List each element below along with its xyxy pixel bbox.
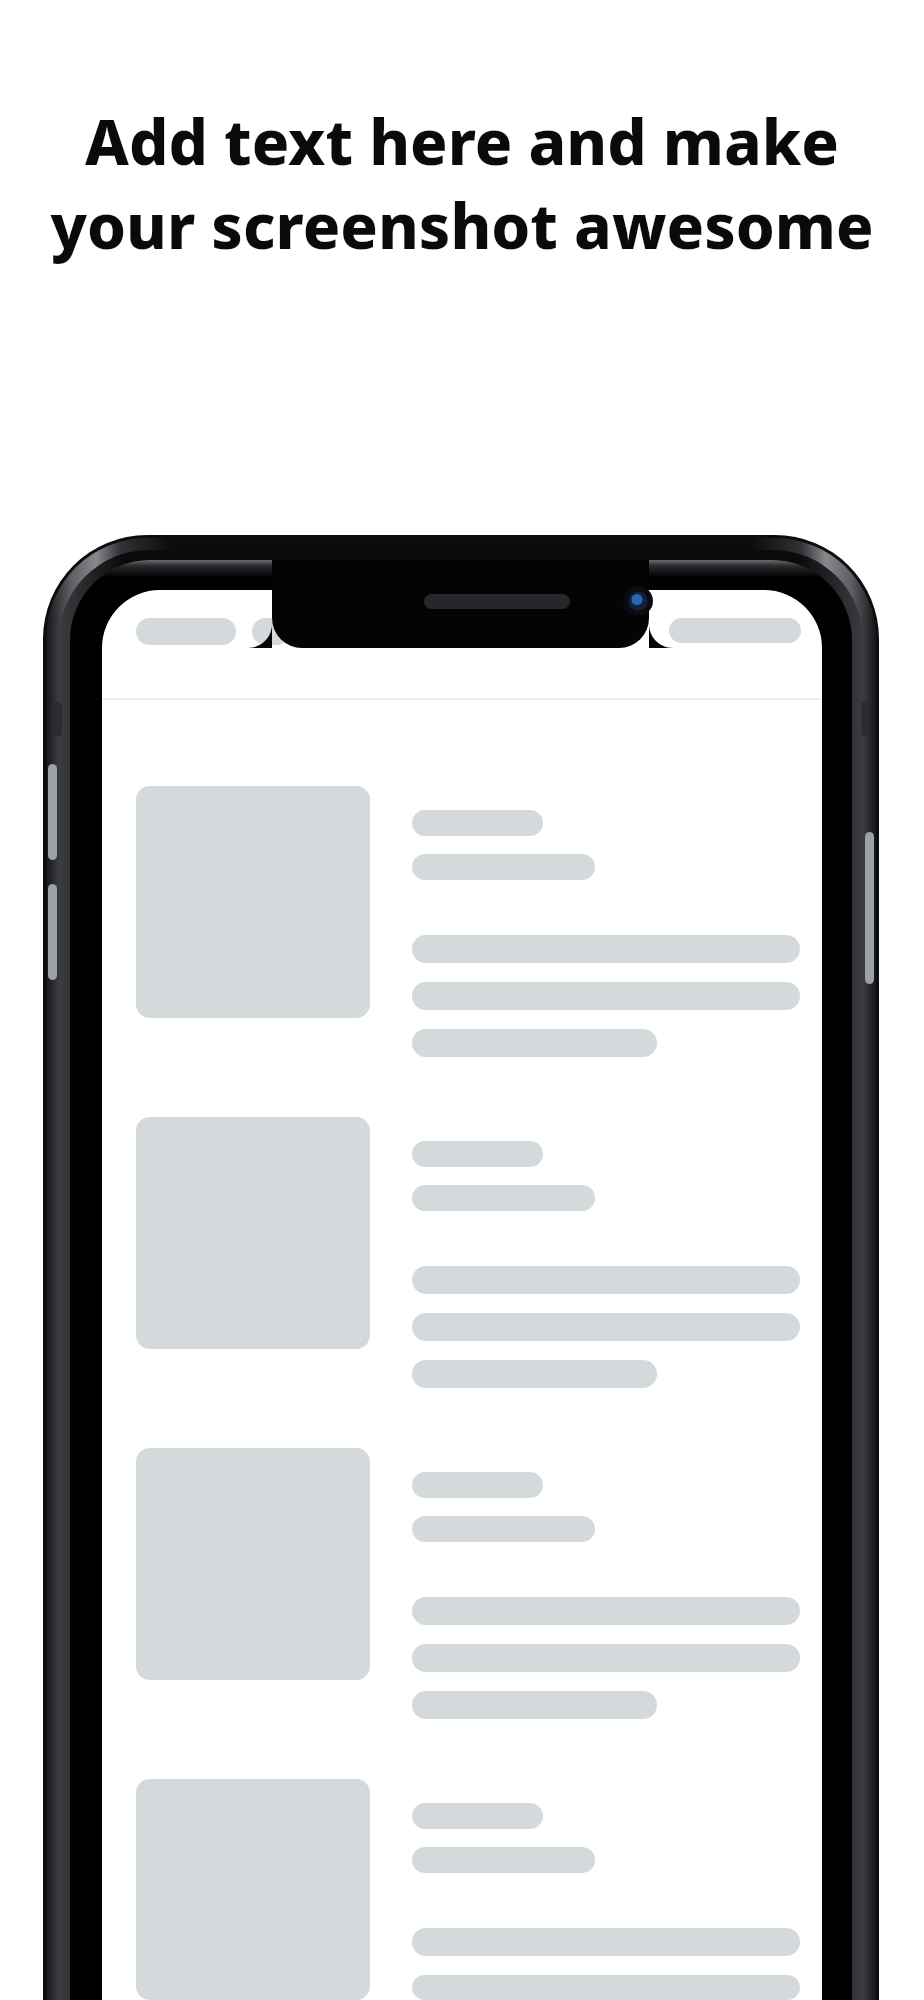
button[interactable] — [136, 618, 290, 645]
button[interactable] — [102, 1117, 822, 1388]
button[interactable] — [102, 1448, 822, 1719]
staticText: Add text here and make — [85, 99, 839, 183]
staticText: your screenshot awesome — [50, 183, 874, 267]
button[interactable] — [102, 786, 822, 1057]
button[interactable] — [102, 1779, 822, 2000]
button[interactable]: More options — [669, 618, 801, 643]
